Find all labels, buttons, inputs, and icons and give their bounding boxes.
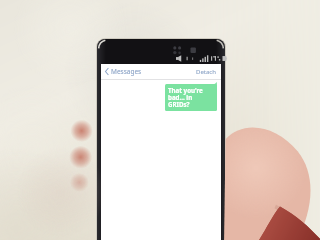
button[interactable]: Messages [104,67,143,76]
staticText: Detach [196,68,216,76]
staticText: That you're bad... in GRIDs? [168,86,214,109]
button[interactable]: Detach [194,67,218,77]
button[interactable]: That you're bad... in GRIDs? [165,84,217,111]
staticText: Messages [111,67,142,76]
